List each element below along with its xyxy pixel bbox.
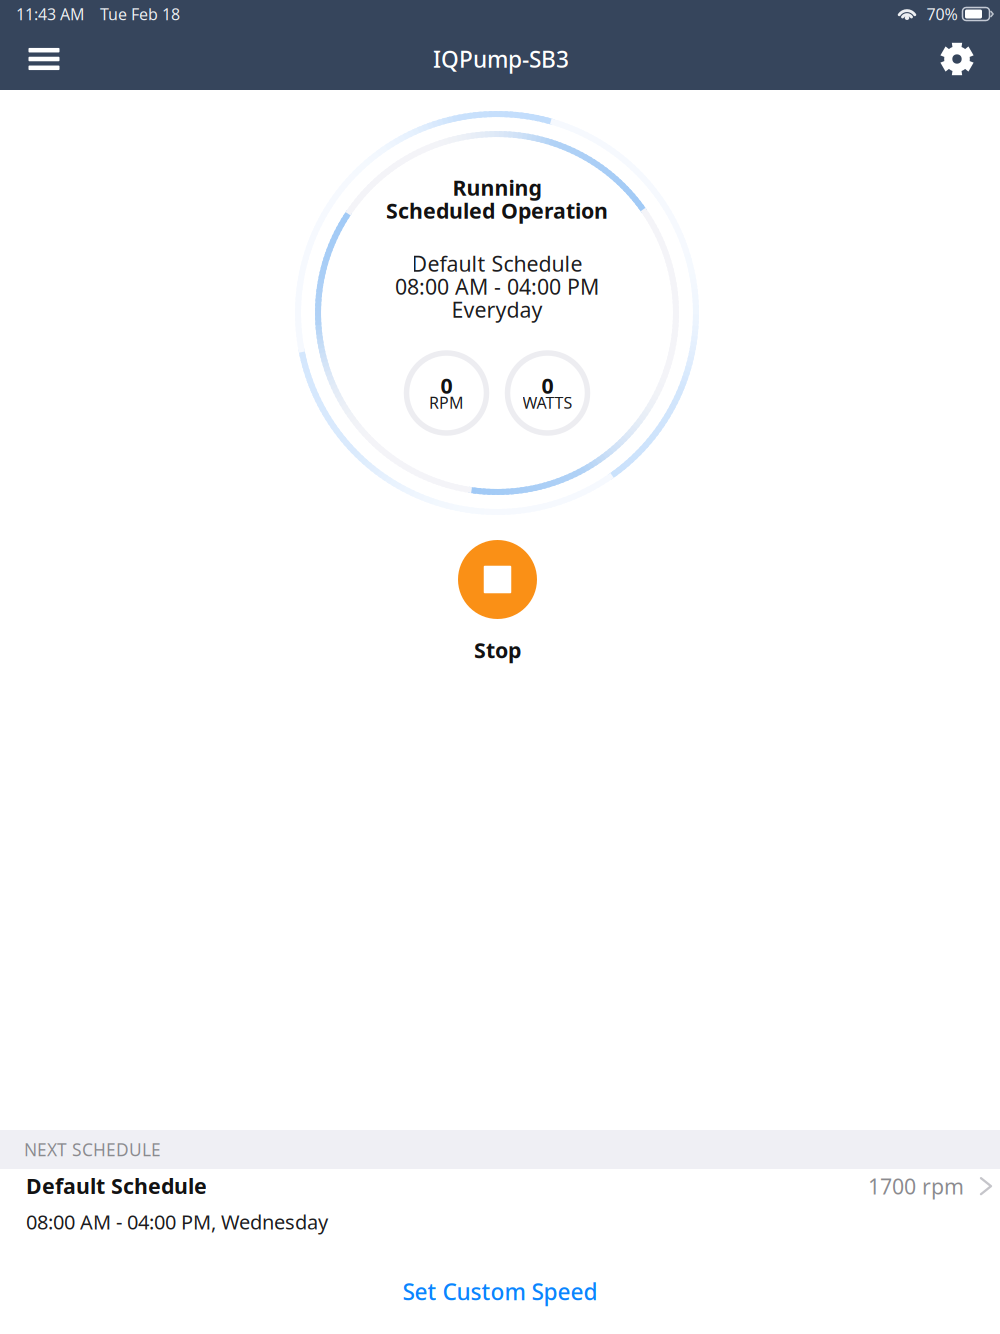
staticText: Stop (474, 636, 521, 664)
staticText: Default Schedule (26, 1171, 207, 1200)
staticText: 08:00 AM - 04:00 PM (395, 272, 599, 301)
staticText: 0 (440, 371, 452, 400)
staticText: Default Schedule (411, 249, 582, 278)
staticText: 11:43 AM (16, 3, 85, 25)
staticText: 08:00 AM - 04:00 PM, Wednesday (26, 1208, 328, 1235)
button[interactable]: Menu (0, 28, 88, 90)
button[interactable]: Set Custom Speed (0, 1249, 1000, 1334)
staticText: 0 (541, 371, 553, 400)
button[interactable]: Stop (458, 540, 537, 660)
staticText: IQPump-SB3 (433, 44, 569, 74)
staticText: RPM (429, 392, 464, 413)
staticText: Running (452, 173, 541, 202)
staticText: Tue Feb 18 (100, 3, 180, 25)
button[interactable]: Settings (914, 28, 1000, 90)
staticText: 70% (926, 3, 957, 25)
staticText: Scheduled Operation (386, 196, 608, 225)
staticText: WATTS (522, 392, 572, 413)
staticText: Everyday (451, 295, 542, 324)
staticText: NEXT SCHEDULE (24, 1138, 161, 1161)
staticText: 1700 rpm (868, 1172, 964, 1200)
staticText: Set Custom Speed (402, 1276, 597, 1306)
button[interactable]: Default Schedule (0, 1169, 1000, 1249)
